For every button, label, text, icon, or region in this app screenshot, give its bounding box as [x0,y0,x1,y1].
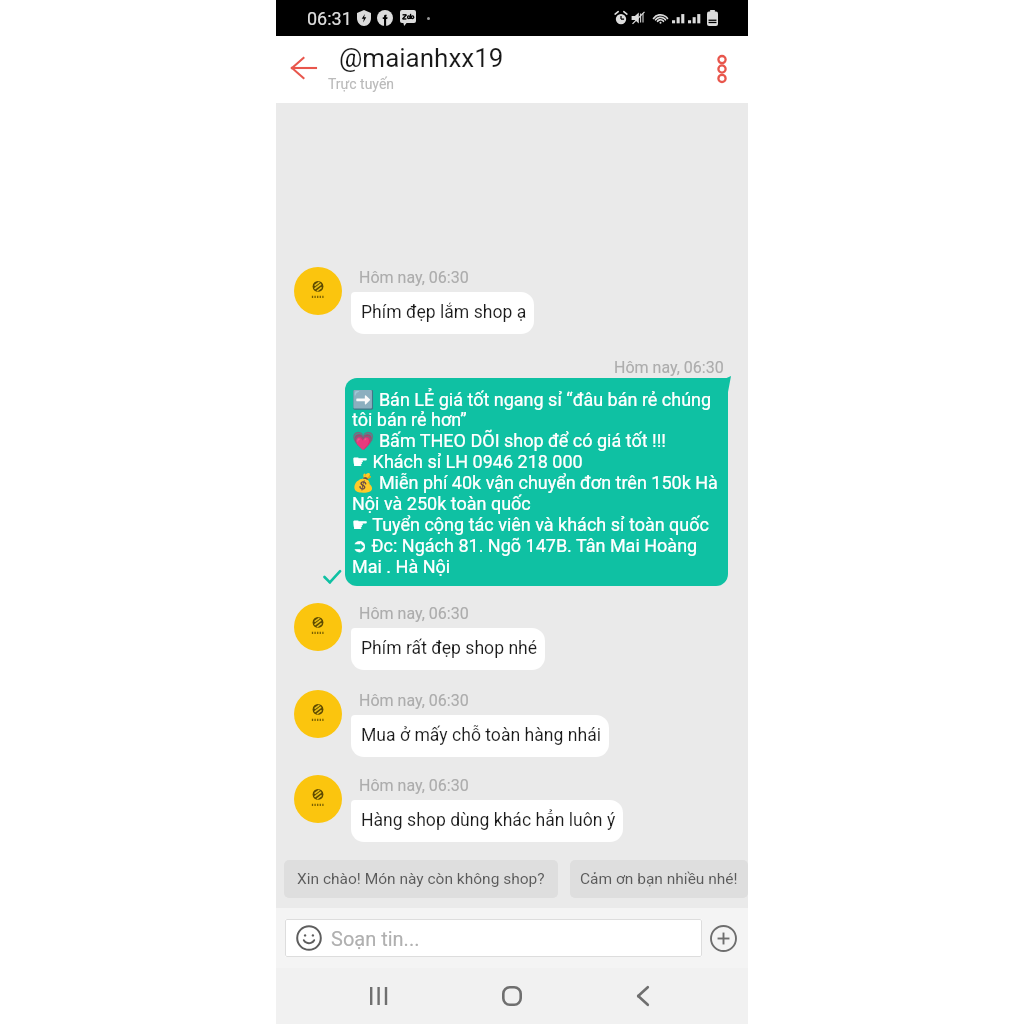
staticText: Hàng shop dùng khác hẳn luôn ý [361,810,616,831]
staticText: Phím đẹp lắm shop ạ [361,302,527,323]
staticText: Soạn tin... [331,927,420,950]
button[interactable]: Mua ở mấy chỗ toàn hàng nhái [351,715,609,757]
button[interactable]: Xin chào! Món này còn không shop? [284,860,558,898]
button[interactable]: ➡️ Bán LẺ giá tốt ngang sỉ “đâu bán rẻ c… [345,378,728,586]
button[interactable]: Profile picture [294,775,342,823]
button[interactable]: Back [280,44,328,92]
staticText: Hôm nay, 06:30 [359,604,469,623]
staticText: 06:31 [307,8,352,29]
staticText: Xin chào! Món này còn không shop? [297,870,545,888]
button[interactable]: Phím đẹp lắm shop ạ [351,292,534,334]
staticText: Cảm ơn bạn nhiều nhé! [580,870,738,888]
button[interactable]: Message input [285,919,702,957]
button[interactable]: Cảm ơn bạn nhiều nhé! [570,860,748,898]
button[interactable]: Profile picture [294,603,342,651]
staticText: ➡️ Bán LẺ giá tốt ngang sỉ “đâu bán rẻ c… [352,389,724,578]
button[interactable]: Profile picture [294,690,342,738]
staticText: @maianhxx19 [339,43,504,73]
button[interactable]: Phím rất đẹp shop nhé [351,628,545,670]
staticText: Hôm nay, 06:30 [359,776,469,795]
staticText: Hôm nay, 06:30 [359,691,469,710]
button[interactable]: Profile picture [294,267,342,315]
button[interactable]: More options [699,47,744,92]
staticText: Hôm nay, 06:30 [614,358,724,377]
staticText: Hôm nay, 06:30 [359,268,469,287]
staticText: Phím rất đẹp shop nhé [361,638,538,659]
button[interactable]: Recent apps [348,968,410,1024]
staticText: Trực tuyến [328,76,395,92]
button[interactable]: Home [481,968,543,1024]
staticText: Mua ở mấy chỗ toàn hàng nhái [361,725,602,746]
button[interactable]: Attach [707,922,739,954]
button[interactable]: Back [612,968,674,1024]
button[interactable]: Hàng shop dùng khác hẳn luôn ý [351,800,623,842]
